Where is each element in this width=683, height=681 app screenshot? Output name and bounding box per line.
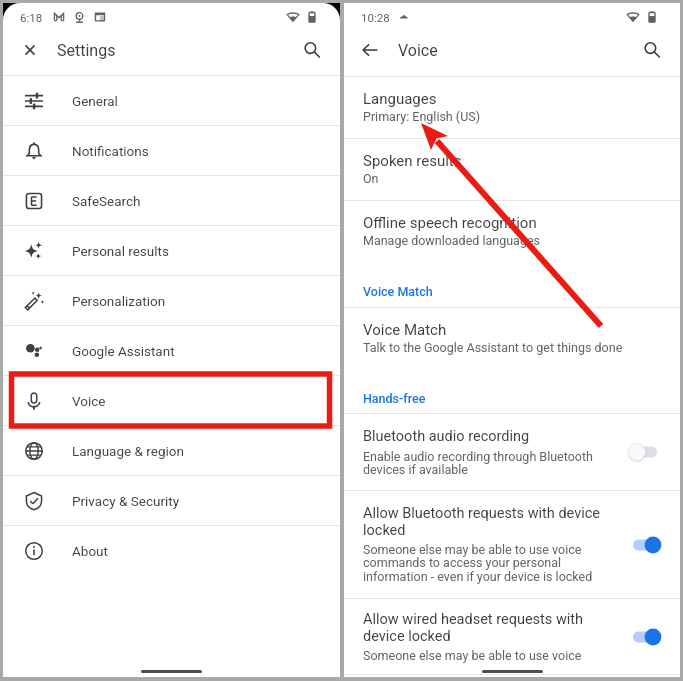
staticText: Allow Bluetooth requests with device loc… xyxy=(363,505,601,538)
button[interactable]: Offline speech recognition xyxy=(344,201,680,261)
staticText: Google Assistant xyxy=(72,343,175,359)
button[interactable]: Voice xyxy=(3,376,340,425)
staticText: Offline speech recognition xyxy=(363,214,537,232)
button[interactable]: Bluetooth audio recording xyxy=(344,414,680,491)
button[interactable]: Language & region xyxy=(3,426,340,475)
staticText: On xyxy=(363,171,379,186)
button[interactable]: Spoken results xyxy=(344,139,680,199)
button[interactable]: Back xyxy=(348,28,392,72)
button[interactable]: Voice Match xyxy=(344,308,680,368)
staticText: Hands-free xyxy=(363,391,426,406)
button[interactable]: Allow wired headset requests with device… xyxy=(344,599,680,675)
staticText: Manage downloaded languages xyxy=(363,233,540,248)
staticText: Voice xyxy=(72,393,106,409)
staticText: Someone else may be able to use voice co… xyxy=(363,542,593,584)
staticText: Primary: English (US) xyxy=(363,109,481,124)
staticText: Someone else may be able to use voice xyxy=(363,648,582,663)
staticText: Language & region xyxy=(72,443,184,459)
staticText: General xyxy=(72,93,118,109)
staticText: Languages xyxy=(363,90,437,108)
button[interactable]: Search xyxy=(290,28,334,72)
staticText: About xyxy=(72,543,108,559)
button[interactable]: Search xyxy=(630,28,674,72)
staticText: Enable audio recording through Bluetooth… xyxy=(363,449,593,477)
button[interactable]: General xyxy=(3,76,340,125)
staticText: Talk to the Google Assistant to get thin… xyxy=(363,340,623,355)
staticText: 6:18 xyxy=(20,11,43,24)
staticText: Settings xyxy=(57,41,116,60)
staticText: Spoken results xyxy=(363,152,462,170)
button[interactable]: Personal results xyxy=(3,226,340,275)
button[interactable]: Privacy & Security xyxy=(3,476,340,525)
button[interactable]: Notifications xyxy=(3,126,340,175)
staticText: Privacy & Security xyxy=(72,493,180,509)
staticText: Personal results xyxy=(72,243,169,259)
staticText: Voice Match xyxy=(363,321,447,339)
staticText: Voice xyxy=(398,41,438,60)
button[interactable]: Allow Bluetooth requests with device loc… xyxy=(344,491,680,599)
button[interactable]: Languages xyxy=(344,77,680,137)
staticText: Allow wired headset requests with device… xyxy=(363,611,584,644)
staticText: SafeSearch xyxy=(72,193,141,209)
staticText: Voice Match xyxy=(363,284,433,299)
button[interactable]: Close xyxy=(8,28,52,72)
staticText: Notifications xyxy=(72,143,149,159)
staticText: Personalization xyxy=(72,293,166,309)
staticText: Bluetooth audio recording xyxy=(363,428,530,445)
button[interactable]: Personalization xyxy=(3,276,340,325)
button[interactable]: SafeSearch xyxy=(3,176,340,225)
staticText: 10:28 xyxy=(361,11,390,24)
button[interactable]: About xyxy=(3,526,340,575)
button[interactable]: Google Assistant xyxy=(3,326,340,375)
